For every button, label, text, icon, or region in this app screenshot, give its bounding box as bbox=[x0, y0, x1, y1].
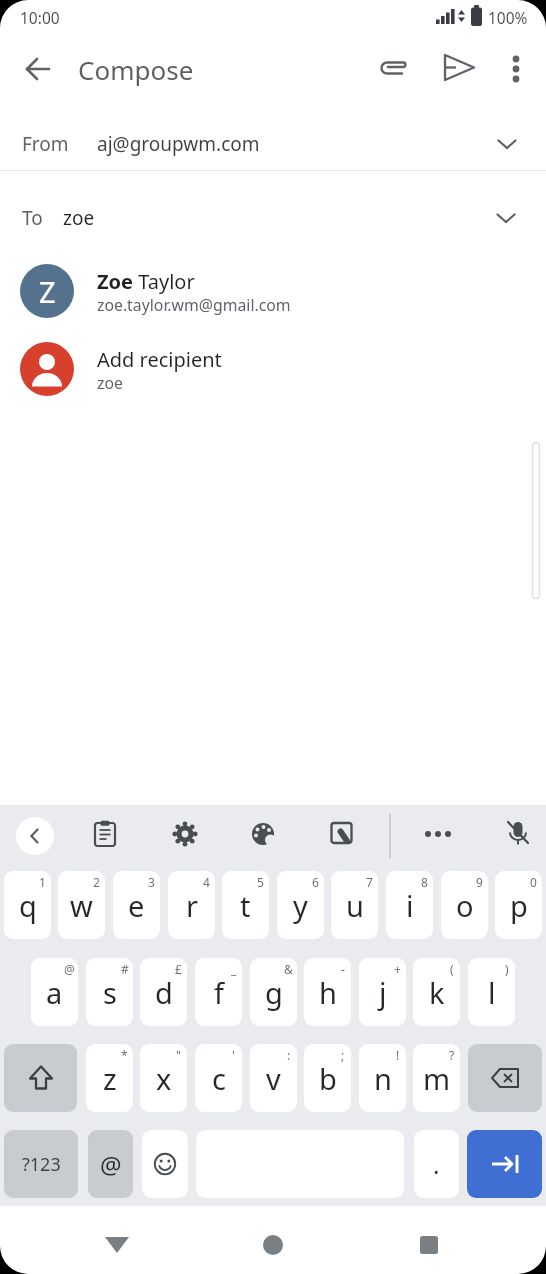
staticText: a bbox=[46, 973, 63, 1012]
staticText: q bbox=[19, 886, 37, 925]
button[interactable]: b bbox=[304, 1044, 351, 1112]
staticText: Compose bbox=[78, 52, 194, 87]
staticText: From bbox=[22, 131, 69, 157]
staticText: 5 bbox=[257, 874, 264, 890]
staticText: @ bbox=[64, 961, 75, 977]
button[interactable]: f bbox=[195, 958, 242, 1026]
button[interactable]: n bbox=[359, 1044, 406, 1112]
staticText: c bbox=[212, 1059, 226, 1098]
staticText: e bbox=[128, 886, 145, 925]
button[interactable]: i bbox=[386, 871, 433, 939]
button[interactable]: a bbox=[31, 958, 78, 1026]
staticText: _ bbox=[231, 961, 237, 977]
button[interactable]: @ bbox=[88, 1130, 133, 1198]
button[interactable]: h bbox=[304, 958, 351, 1026]
button[interactable] bbox=[164, 813, 206, 855]
staticText: ? bbox=[449, 1047, 455, 1063]
staticText: u bbox=[346, 886, 364, 925]
staticText: ; bbox=[341, 1047, 345, 1063]
staticText: £ bbox=[175, 961, 182, 977]
staticText: @ bbox=[100, 1148, 122, 1181]
staticText: ( bbox=[450, 961, 454, 977]
button[interactable] bbox=[0, 180, 546, 246]
button[interactable] bbox=[14, 45, 62, 93]
button[interactable] bbox=[372, 45, 420, 93]
staticText: d bbox=[155, 973, 173, 1012]
staticText: ?123 bbox=[22, 1152, 61, 1177]
button[interactable] bbox=[16, 817, 54, 855]
button[interactable]: q bbox=[4, 871, 51, 939]
button[interactable]: d bbox=[140, 958, 187, 1026]
staticText: & bbox=[284, 961, 293, 977]
staticText: aj@groupwm.com bbox=[97, 131, 260, 157]
button[interactable]: g bbox=[250, 958, 297, 1026]
staticText: h bbox=[319, 973, 337, 1012]
staticText: j bbox=[379, 973, 387, 1012]
staticText: 1 bbox=[39, 874, 46, 890]
button[interactable] bbox=[249, 1221, 297, 1269]
staticText: p bbox=[510, 886, 528, 925]
button[interactable] bbox=[242, 813, 284, 855]
button[interactable]: z bbox=[86, 1044, 133, 1112]
staticText: Add recipient bbox=[97, 346, 222, 373]
staticText: r bbox=[186, 886, 198, 925]
staticText: o bbox=[456, 886, 474, 925]
button[interactable] bbox=[4, 1044, 77, 1112]
staticText: z bbox=[103, 1059, 117, 1098]
button[interactable]: o bbox=[441, 871, 488, 939]
staticText: Z bbox=[39, 272, 56, 311]
staticText: * bbox=[121, 1047, 128, 1063]
button[interactable]: s bbox=[86, 958, 133, 1026]
staticText: y bbox=[293, 886, 308, 925]
button[interactable]: x bbox=[140, 1044, 187, 1112]
button[interactable]: v bbox=[250, 1044, 297, 1112]
button[interactable] bbox=[467, 1130, 542, 1198]
button[interactable]: k bbox=[413, 958, 460, 1026]
button[interactable]: w bbox=[58, 871, 105, 939]
button[interactable] bbox=[417, 813, 459, 855]
button[interactable]: . bbox=[414, 1130, 459, 1198]
staticText: : bbox=[287, 1047, 291, 1063]
staticText: n bbox=[374, 1059, 392, 1098]
button[interactable]: ?123 bbox=[4, 1130, 78, 1198]
staticText: 8 bbox=[421, 874, 428, 890]
button[interactable] bbox=[436, 45, 484, 93]
staticText: 3 bbox=[148, 874, 155, 890]
staticText: zoe bbox=[63, 205, 95, 231]
button[interactable]: Add recipient bbox=[0, 331, 546, 411]
staticText: ' bbox=[232, 1047, 235, 1063]
button[interactable]: u bbox=[331, 871, 378, 939]
staticText: l bbox=[488, 973, 496, 1012]
button[interactable] bbox=[93, 1221, 141, 1269]
staticText: To bbox=[22, 205, 43, 231]
staticText: g bbox=[265, 973, 283, 1012]
button[interactable]: t bbox=[222, 871, 269, 939]
staticText: + bbox=[394, 961, 401, 977]
button[interactable] bbox=[142, 1130, 188, 1198]
staticText: 100% bbox=[488, 7, 528, 28]
button[interactable] bbox=[321, 813, 363, 855]
button[interactable] bbox=[492, 45, 540, 93]
staticText: 10:00 bbox=[20, 7, 60, 28]
staticText: v bbox=[266, 1059, 281, 1098]
staticText: 2 bbox=[93, 874, 100, 890]
button[interactable] bbox=[0, 110, 546, 171]
button[interactable] bbox=[497, 813, 539, 855]
button[interactable]: Z bbox=[0, 250, 546, 331]
button[interactable] bbox=[84, 813, 126, 855]
staticText: s bbox=[103, 973, 117, 1012]
button[interactable]: e bbox=[113, 871, 160, 939]
button[interactable] bbox=[405, 1221, 453, 1269]
button[interactable]: l bbox=[468, 958, 515, 1026]
button[interactable] bbox=[468, 1044, 542, 1112]
staticText: ! bbox=[396, 1047, 400, 1063]
button[interactable]: c bbox=[195, 1044, 242, 1112]
button[interactable]: j bbox=[359, 958, 406, 1026]
staticText: " bbox=[176, 1047, 181, 1063]
button[interactable]: p bbox=[495, 871, 542, 939]
button[interactable]: m bbox=[413, 1044, 460, 1112]
button[interactable]: y bbox=[277, 871, 324, 939]
button[interactable]: r bbox=[168, 871, 215, 939]
staticText: b bbox=[319, 1059, 337, 1098]
